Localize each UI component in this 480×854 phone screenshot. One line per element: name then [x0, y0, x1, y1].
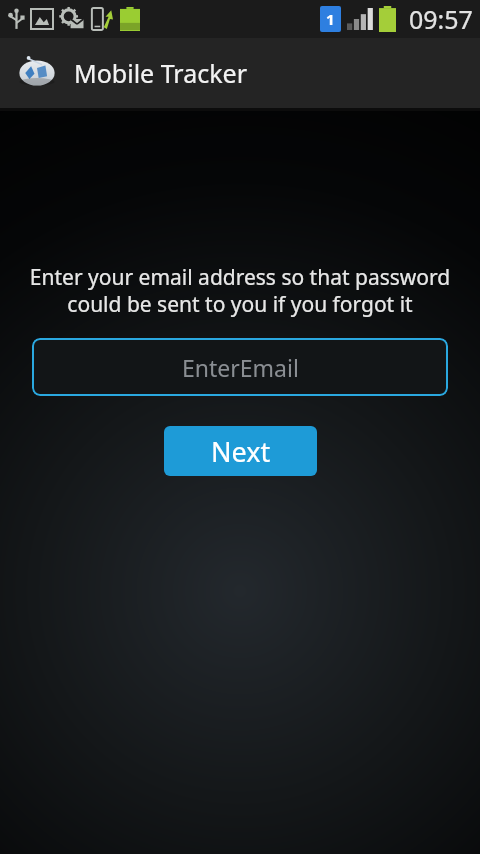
staticText: Enter your email address so that passwor…: [16, 263, 464, 318]
staticText: EnterEmail: [182, 352, 299, 383]
staticText: 09:57: [409, 2, 473, 36]
staticText: Mobile Tracker: [74, 56, 247, 90]
staticText: 1: [326, 9, 335, 29]
button[interactable]: Next: [164, 426, 317, 476]
button[interactable]: EnterEmail: [32, 338, 448, 396]
other: App icon: [14, 50, 60, 96]
staticText: Next: [211, 433, 271, 470]
